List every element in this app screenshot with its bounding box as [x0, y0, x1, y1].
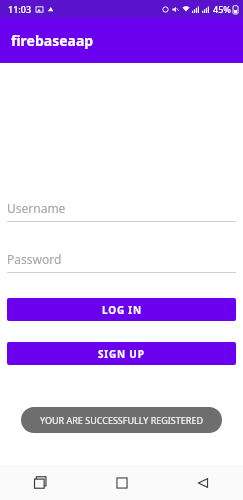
staticText: 45% [213, 3, 231, 15]
staticText: LOG IN [102, 303, 142, 317]
staticText: Username [7, 200, 66, 216]
button[interactable]: Home [81, 465, 162, 500]
button[interactable]: Back [162, 465, 243, 500]
button[interactable]: Password [7, 251, 236, 273]
button[interactable]: YOUR ARE SUCCESSFULLY REGISTERED [21, 407, 222, 433]
staticText: Password [7, 251, 62, 267]
staticText: YOUR ARE SUCCESSFULLY REGISTERED [40, 414, 203, 426]
staticText: SIGN UP [98, 347, 145, 361]
staticText: firebaseaap [11, 31, 94, 50]
button[interactable]: LOG IN [7, 298, 236, 321]
staticText: 11:03 [8, 3, 32, 15]
button[interactable]: Username [7, 200, 236, 222]
button[interactable]: Recent apps [0, 465, 81, 500]
button[interactable]: SIGN UP [7, 342, 236, 365]
